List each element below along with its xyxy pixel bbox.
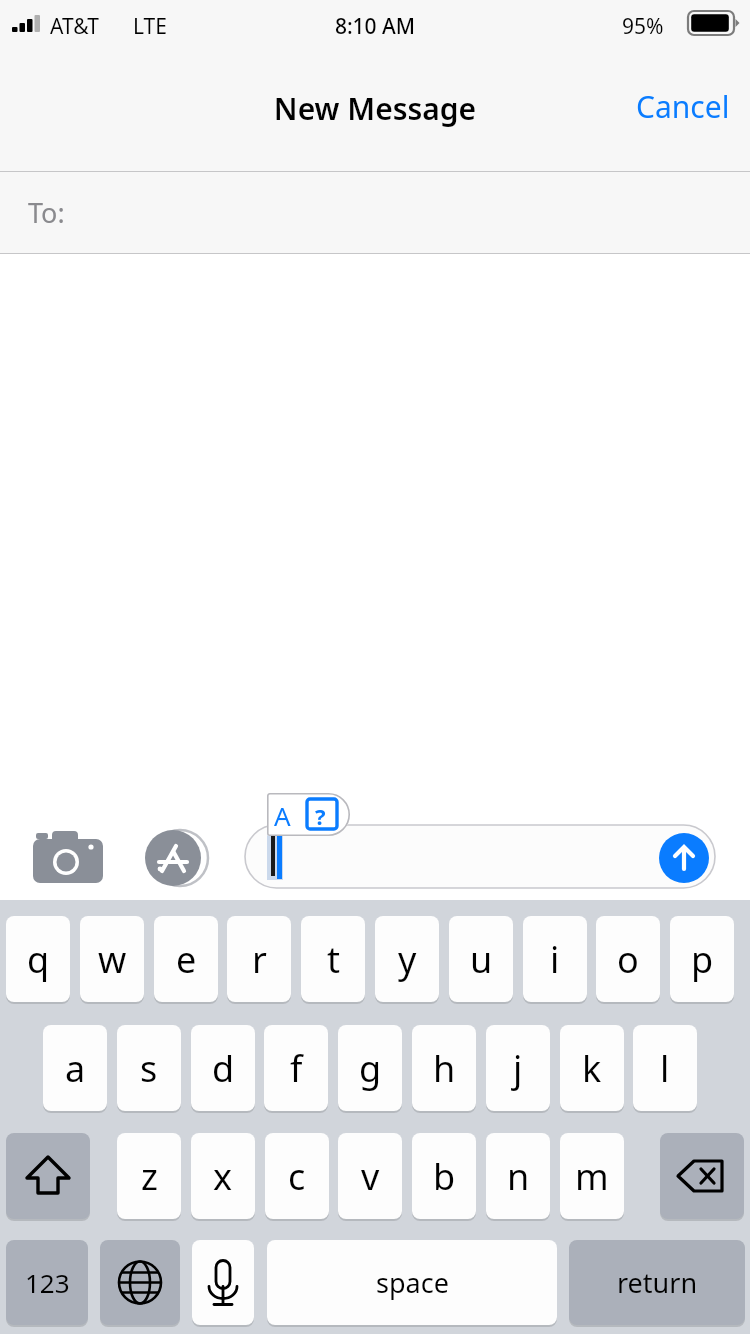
button[interactable]: c <box>265 1133 329 1219</box>
staticText: z <box>141 1152 158 1201</box>
staticText: To: <box>28 194 65 231</box>
button[interactable]: Send <box>659 833 709 883</box>
staticText: space <box>376 1264 449 1301</box>
button[interactable]: Change keyboard <box>100 1240 180 1325</box>
button[interactable] <box>267 793 350 836</box>
staticText: i <box>550 935 560 984</box>
button[interactable]: z <box>117 1133 181 1219</box>
staticText: h <box>433 1044 456 1093</box>
staticText: 95% <box>622 12 664 41</box>
staticText: ? <box>315 801 326 831</box>
button[interactable]: v <box>338 1133 402 1219</box>
staticText: k <box>582 1044 602 1093</box>
staticText: o <box>617 935 639 984</box>
button[interactable]: Camera <box>24 824 112 892</box>
staticText: m <box>575 1152 609 1201</box>
staticText: w <box>98 935 127 984</box>
button[interactable]: g <box>338 1025 402 1111</box>
button[interactable]: y <box>375 916 439 1002</box>
staticText: 8:10 AM <box>0 12 750 41</box>
button[interactable]: d <box>191 1025 255 1111</box>
staticText: d <box>212 1044 235 1093</box>
staticText: n <box>507 1152 530 1201</box>
button[interactable]: x <box>191 1133 255 1219</box>
button[interactable]: m <box>560 1133 624 1219</box>
staticText: t <box>327 935 340 984</box>
staticText: A <box>274 798 291 833</box>
staticText: LTE <box>133 12 167 41</box>
staticText: v <box>361 1152 380 1201</box>
button[interactable]: Backspace <box>660 1133 744 1219</box>
button[interactable]: o <box>596 916 660 1002</box>
staticText: x <box>213 1152 233 1201</box>
button[interactable]: j <box>486 1025 550 1111</box>
button[interactable]: p <box>670 916 734 1002</box>
button[interactable]: s <box>117 1025 181 1111</box>
staticText: q <box>27 935 50 984</box>
staticText: e <box>176 935 197 984</box>
button[interactable]: b <box>412 1133 476 1219</box>
staticText: r <box>252 935 267 984</box>
button[interactable]: k <box>560 1025 624 1111</box>
staticText: c <box>288 1152 306 1201</box>
button[interactable]: e <box>154 916 218 1002</box>
button[interactable]: f <box>264 1025 328 1111</box>
staticText: j <box>513 1044 523 1093</box>
staticText: g <box>359 1044 382 1093</box>
button[interactable]: Shift <box>6 1133 90 1219</box>
staticText: 123 <box>25 1265 70 1300</box>
button[interactable]: i <box>523 916 587 1002</box>
staticText: s <box>140 1044 158 1093</box>
staticText: u <box>470 935 493 984</box>
button[interactable]: n <box>486 1133 550 1219</box>
staticText: l <box>660 1044 670 1093</box>
button[interactable]: space <box>267 1240 557 1325</box>
button[interactable]: r <box>227 916 291 1002</box>
button[interactable]: l <box>633 1025 697 1111</box>
button[interactable] <box>245 825 715 888</box>
button[interactable]: Dictation <box>192 1240 254 1325</box>
button[interactable]: Apps <box>140 824 212 892</box>
staticText: a <box>65 1044 86 1093</box>
button[interactable]: Numbers <box>6 1240 88 1325</box>
button[interactable]: Cancel <box>600 78 730 134</box>
button[interactable]: return <box>569 1240 745 1325</box>
button[interactable] <box>0 172 750 253</box>
staticText: return <box>617 1264 698 1301</box>
button[interactable]: w <box>80 916 144 1002</box>
staticText: Cancel <box>636 86 730 127</box>
staticText: New Message <box>0 88 750 129</box>
button[interactable]: a <box>43 1025 107 1111</box>
button[interactable]: u <box>449 916 513 1002</box>
staticText: p <box>691 935 714 984</box>
staticText: y <box>398 935 417 984</box>
staticText: b <box>433 1152 456 1201</box>
staticText: f <box>290 1044 303 1093</box>
button[interactable]: t <box>301 916 365 1002</box>
button[interactable]: q <box>6 916 70 1002</box>
button[interactable]: h <box>412 1025 476 1111</box>
staticText: AT&T <box>50 12 99 41</box>
